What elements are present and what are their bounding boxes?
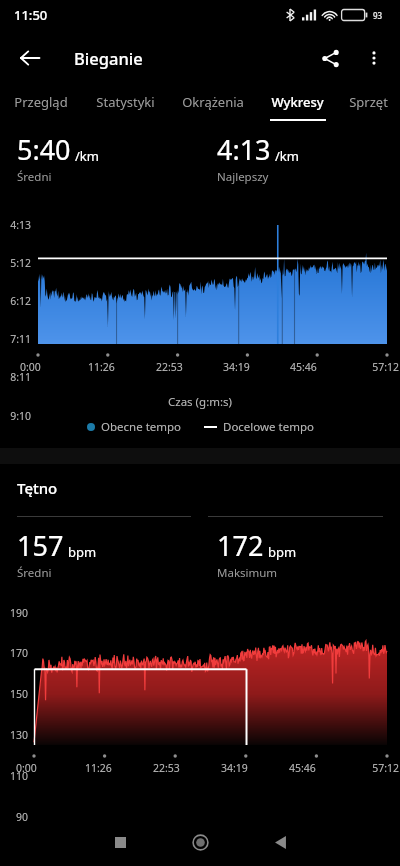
staticText: 170 bbox=[0, 646, 28, 660]
button[interactable]: Share bbox=[308, 36, 352, 80]
staticText: Okrążenia bbox=[182, 93, 244, 111]
staticText: Najlepszy bbox=[217, 169, 269, 185]
staticText: 57:12 bbox=[357, 360, 399, 374]
staticText: 4:13 bbox=[0, 218, 31, 232]
staticText: 9:10 bbox=[0, 409, 31, 423]
staticText: Bieganie bbox=[74, 47, 143, 69]
button[interactable]: Statystyki bbox=[82, 86, 168, 124]
staticText: 157 bbox=[17, 527, 64, 564]
button[interactable]: Home bbox=[160, 818, 240, 866]
button[interactable]: Przegląd bbox=[0, 86, 82, 124]
staticText: 190 bbox=[0, 606, 28, 620]
staticText: Przegląd bbox=[14, 93, 68, 111]
staticText: 45:46 bbox=[290, 360, 357, 374]
staticText: Obecne tempo bbox=[101, 419, 182, 435]
staticText: 34:19 bbox=[223, 360, 290, 374]
staticText: Maksimum bbox=[217, 565, 278, 581]
staticText: /km bbox=[75, 147, 99, 165]
staticText: Tętno bbox=[17, 478, 58, 498]
staticText: 5:12 bbox=[0, 256, 31, 270]
button[interactable]: Sprzęt bbox=[337, 86, 400, 124]
staticText: 11:26 bbox=[85, 761, 153, 775]
staticText: 7:11 bbox=[0, 332, 31, 346]
staticText: 150 bbox=[0, 687, 28, 701]
staticText: bpm bbox=[268, 543, 297, 561]
staticText: 8:11 bbox=[0, 370, 31, 384]
staticText: 90 bbox=[0, 810, 28, 824]
staticText: Docelowe tempo bbox=[223, 419, 314, 435]
staticText: Sprzęt bbox=[349, 93, 388, 111]
button[interactable]: Back bbox=[240, 818, 320, 866]
staticText: Średni bbox=[17, 169, 52, 185]
staticText: 172 bbox=[217, 527, 264, 564]
staticText: 22:53 bbox=[156, 360, 223, 374]
staticText: bpm bbox=[68, 543, 97, 561]
button[interactable]: Okrążenia bbox=[168, 86, 258, 124]
staticText: 22:53 bbox=[153, 761, 221, 775]
staticText: 5:40 bbox=[17, 131, 71, 168]
staticText: 110 bbox=[0, 769, 28, 783]
staticText: Wykresy bbox=[271, 93, 324, 111]
staticText: 93 bbox=[373, 10, 383, 21]
staticText: 0:00 bbox=[16, 761, 85, 775]
staticText: Czas (g:m:s) bbox=[168, 394, 233, 410]
staticText: 34:19 bbox=[221, 761, 289, 775]
button[interactable]: Wykresy bbox=[258, 86, 337, 124]
staticText: 57:12 bbox=[357, 761, 399, 775]
staticText: /km bbox=[275, 147, 299, 165]
button[interactable]: Back bbox=[6, 34, 54, 82]
button[interactable]: More options bbox=[352, 36, 396, 80]
staticText: 45:46 bbox=[289, 761, 357, 775]
staticText: 6:12 bbox=[0, 294, 31, 308]
staticText: 11:26 bbox=[88, 360, 156, 374]
staticText: 130 bbox=[0, 728, 28, 742]
staticText: 11:50 bbox=[14, 6, 48, 24]
staticText: 4:13 bbox=[217, 131, 271, 168]
staticText: Statystyki bbox=[96, 93, 155, 111]
staticText: 0:00 bbox=[20, 360, 88, 374]
button[interactable]: Recent apps bbox=[80, 818, 160, 866]
staticText: Średni bbox=[17, 565, 52, 581]
